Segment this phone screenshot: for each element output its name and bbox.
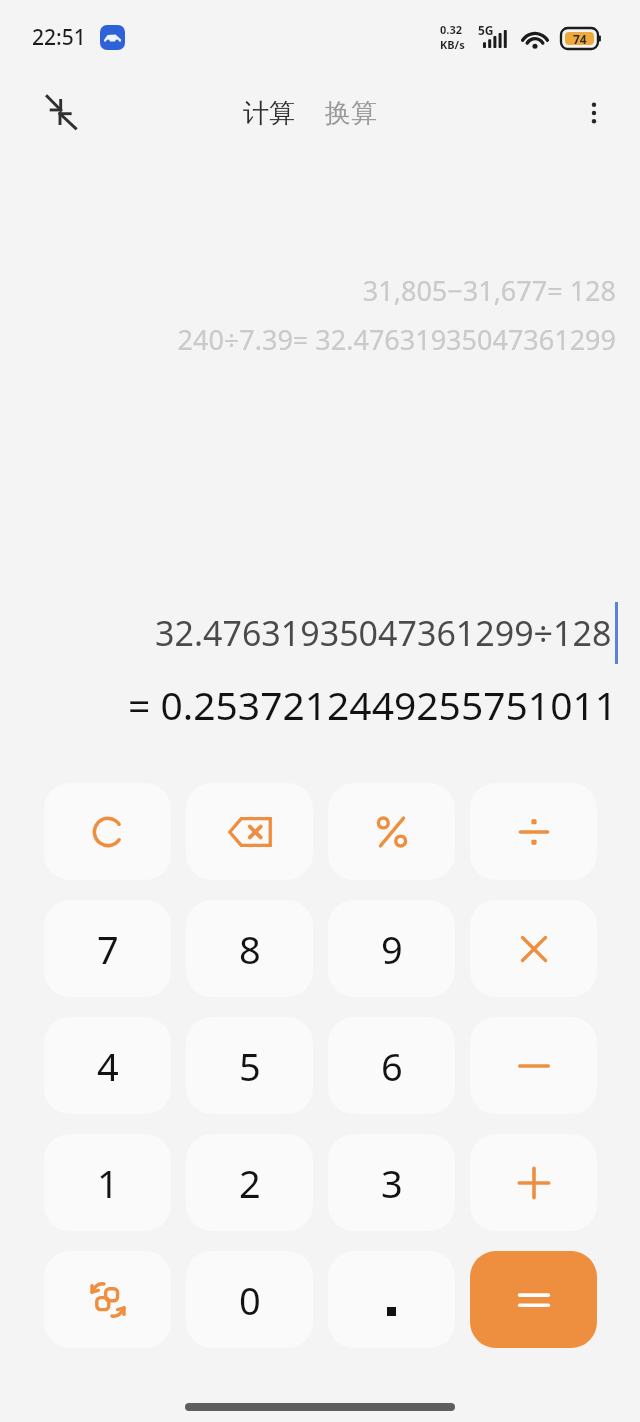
button[interactable]: 3 — [328, 1134, 455, 1231]
staticText: 4 — [97, 1040, 119, 1092]
button[interactable]: Plus — [470, 1134, 597, 1231]
staticText: 0 — [239, 1274, 261, 1326]
staticText: 240÷7.39= 32.47631935047361299 — [177, 321, 616, 358]
staticText: 换算 — [325, 97, 377, 130]
button[interactable]: 换算 — [317, 91, 385, 136]
button[interactable]: Multiply — [470, 900, 597, 997]
staticText: KB/s — [440, 37, 465, 52]
staticText: 22:51 — [32, 23, 86, 52]
staticText: 8 — [239, 923, 261, 975]
button[interactable] — [44, 783, 171, 880]
button[interactable]: 计算 — [235, 91, 303, 136]
staticText: 计算 — [243, 97, 295, 130]
button[interactable]: More options — [562, 81, 626, 145]
staticText: 0.32 — [440, 22, 462, 37]
button[interactable]: 4 — [44, 1017, 171, 1114]
staticText: 31,805−31,677= 128 — [362, 272, 616, 309]
staticText: 9 — [381, 923, 403, 975]
staticText: 2 — [239, 1157, 261, 1209]
button[interactable]: Collapse — [26, 78, 94, 146]
button[interactable]: Backspace — [186, 783, 313, 880]
staticText: 3 — [381, 1157, 403, 1209]
button[interactable]: Unit converter — [44, 1251, 171, 1348]
button[interactable] — [328, 1251, 455, 1348]
button[interactable]: 1 — [44, 1134, 171, 1231]
staticText: 1 — [97, 1157, 119, 1209]
staticText: = 0.2537212449255751011 — [128, 678, 618, 731]
staticText: 6 — [381, 1040, 403, 1092]
button[interactable]: 8 — [186, 900, 313, 997]
button[interactable]: 2 — [186, 1134, 313, 1231]
button[interactable]: 0 — [186, 1251, 313, 1348]
button[interactable]: 5 — [186, 1017, 313, 1114]
button[interactable]: 9 — [328, 900, 455, 997]
button[interactable]: Divide — [470, 783, 597, 880]
button[interactable]: Percent — [328, 783, 455, 880]
staticText: 74 — [573, 31, 587, 47]
staticText: 7 — [97, 923, 119, 975]
button[interactable]: 7 — [44, 900, 171, 997]
staticText: 5G — [478, 22, 494, 38]
staticText: 5 — [239, 1040, 261, 1092]
button[interactable]: Minus — [470, 1017, 597, 1114]
staticText: 32.47631935047361299÷128 — [155, 610, 612, 656]
button[interactable]: Equals — [470, 1251, 597, 1348]
button[interactable]: 6 — [328, 1017, 455, 1114]
